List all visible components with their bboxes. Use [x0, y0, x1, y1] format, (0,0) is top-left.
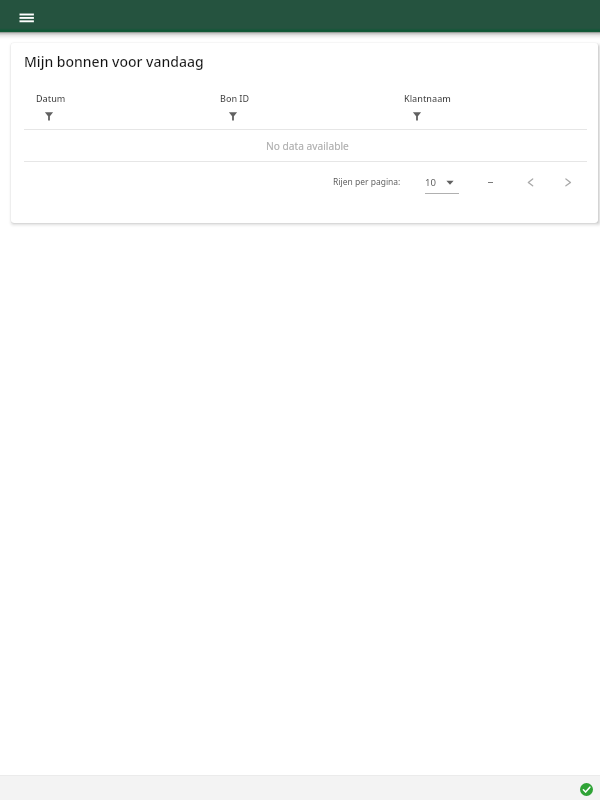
button[interactable]: Open navigation menu [15, 4, 39, 28]
staticText: 10 [425, 176, 436, 189]
staticText: Klantnaam [404, 92, 451, 104]
button[interactable]: Filter by Klantnaam [408, 107, 426, 125]
button[interactable]: Connection OK [580, 783, 593, 796]
staticText: Mijn bonnen voor vandaag [24, 52, 204, 71]
staticText: No data available [266, 139, 349, 153]
button[interactable]: Previous page [521, 174, 538, 191]
button[interactable]: Filter by Datum [40, 107, 58, 125]
staticText: Rijen per pagina: [333, 176, 401, 188]
button[interactable]: Page range [481, 173, 500, 192]
staticText: Datum [36, 92, 66, 104]
button[interactable]: Rows per page: 10 [423, 172, 461, 194]
staticText: Bon ID [220, 92, 250, 104]
button[interactable]: Filter by Bon ID [224, 107, 242, 125]
button[interactable]: Next page [559, 174, 576, 191]
